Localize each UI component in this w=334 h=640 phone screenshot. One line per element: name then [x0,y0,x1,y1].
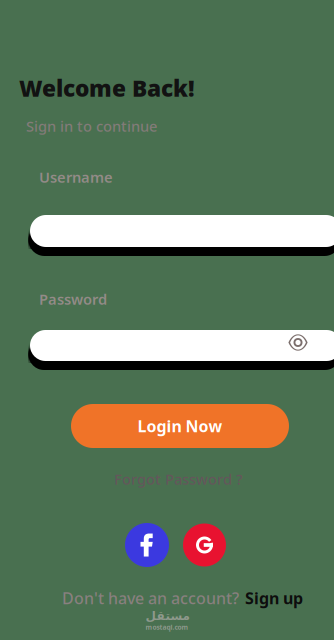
staticText: Password [39,289,107,309]
button[interactable]: Forgot Password ? [114,471,254,487]
staticText: Username [39,167,113,187]
button[interactable]: Login Now [71,404,289,448]
button[interactable]: Don't have an account? [62,590,312,606]
staticText: Login Now [137,415,222,437]
staticText: Sign in to continue [26,116,157,136]
button[interactable]: Sign in with Facebook [125,523,169,567]
staticText: Sign up [245,587,303,609]
staticText: Forgot Password ? [114,469,243,489]
staticText: Welcome Back! [19,73,195,103]
button[interactable]: Username field [30,215,334,247]
staticText: mostaql.com [145,623,188,631]
staticText: Don't have an account? [62,587,239,609]
staticText: مستقل [145,609,189,623]
button[interactable]: Sign in with Google [183,523,226,566]
button[interactable]: Password field [30,330,334,361]
